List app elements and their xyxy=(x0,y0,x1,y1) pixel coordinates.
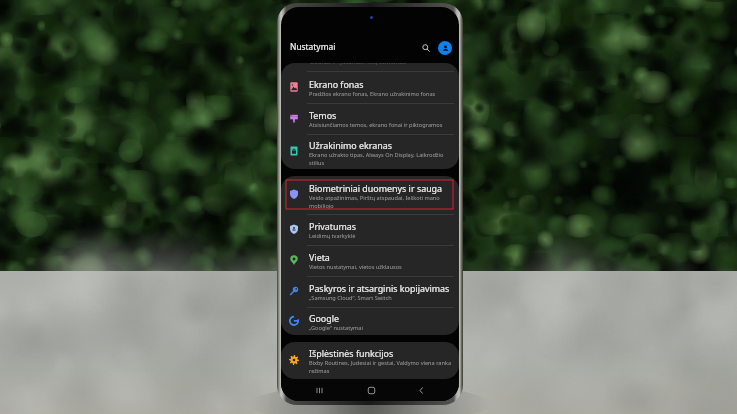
staticText: Google xyxy=(309,312,340,324)
staticText: Leidimų tvarkyklė xyxy=(309,232,356,240)
button[interactable]: Paskyros ir atsarginis kopijavimas xyxy=(281,277,459,307)
button[interactable]: Biometriniai duomenys ir sauga xyxy=(281,176,459,214)
staticText: Biometriniai duomenys ir sauga xyxy=(309,182,443,194)
button[interactable]: Ekrano fonas xyxy=(281,72,459,103)
staticText: Vietos nustatymai, vietos užklausos xyxy=(309,263,402,271)
staticText: „Samsung Cloud“, Smart Switch xyxy=(309,294,392,302)
staticText: Išplėstinės funkcijos xyxy=(309,347,394,359)
button[interactable]: Vieta xyxy=(281,246,459,276)
staticText: Ekranas ir ryškumas, Akių komfortas xyxy=(310,63,406,66)
staticText: Veido atpažinimas, Pirštų atspaudai, Ieš… xyxy=(309,194,453,209)
button[interactable]: Temos xyxy=(281,104,459,134)
button[interactable]: Google xyxy=(281,308,459,335)
button[interactable]: Išplėstinės funkcijos xyxy=(281,342,459,379)
button[interactable]: Recents xyxy=(308,379,330,401)
button[interactable]: Account xyxy=(438,41,452,55)
staticText: Pradžios ekrano fonas, Ekrano užrakinimo… xyxy=(309,90,436,98)
staticText: Atsisiunčiamos temos, ekrano fonai ir pi… xyxy=(309,121,443,129)
staticText: Paskyros ir atsarginis kopijavimas xyxy=(309,282,450,294)
button[interactable]: Home xyxy=(360,379,382,401)
button[interactable]: Search xyxy=(418,40,434,56)
staticText: Ekrano fonas xyxy=(309,78,364,90)
button[interactable]: Privatumas xyxy=(281,215,459,245)
staticText: Privatumas xyxy=(309,220,357,232)
button[interactable]: Užrakinimo ekranas xyxy=(281,135,459,169)
staticText: „Google“ nustatymai xyxy=(309,324,363,332)
staticText: Temos xyxy=(309,109,337,121)
staticText: Užrakinimo ekranas xyxy=(309,139,392,151)
staticText: Bixby Routines, Judesiai ir gestai, Vald… xyxy=(309,359,453,374)
staticText: Vieta xyxy=(309,251,330,263)
staticText: Nustatymai xyxy=(290,41,336,52)
button[interactable]: Back xyxy=(410,379,432,401)
staticText: Ekrano užrakto tipas, Always On Display,… xyxy=(309,151,453,166)
